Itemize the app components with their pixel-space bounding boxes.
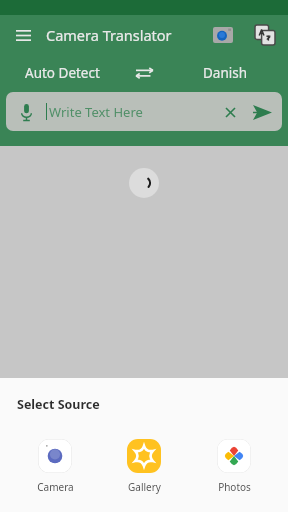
button[interactable]: Send [248, 98, 276, 126]
staticText: Select Source [17, 396, 100, 413]
button[interactable]: Gallery [109, 437, 179, 496]
button[interactable]: Photos [199, 437, 269, 496]
button[interactable]: Camera [208, 20, 238, 50]
staticText: Photos [218, 480, 251, 494]
staticText: Danish [203, 64, 248, 82]
button[interactable]: Clear text [218, 100, 242, 124]
button[interactable]: Menu [8, 20, 38, 50]
button[interactable]: Danish [163, 54, 288, 92]
button[interactable]: Camera [20, 437, 90, 496]
staticText: Camera Translator [46, 25, 172, 45]
staticText: Auto Detect [25, 64, 100, 82]
button[interactable]: Voice input [6, 92, 282, 131]
button[interactable]: Translate [250, 20, 280, 50]
staticText: Gallery [128, 480, 161, 494]
staticText: Write Text Here [49, 103, 143, 121]
button[interactable]: Voice input [14, 100, 38, 124]
button[interactable]: Auto Detect [0, 54, 125, 92]
staticText: Camera [37, 480, 74, 494]
button[interactable]: Swap languages [125, 54, 163, 92]
